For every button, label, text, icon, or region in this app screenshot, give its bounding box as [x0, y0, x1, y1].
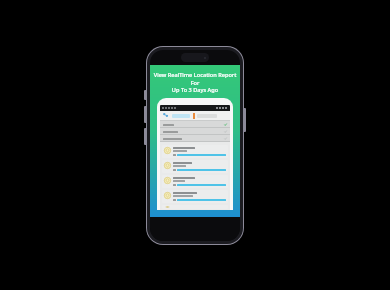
button[interactable] — [160, 121, 230, 128]
button[interactable] — [160, 128, 230, 135]
button[interactable] — [162, 145, 228, 158]
button[interactable] — [162, 205, 228, 209]
button[interactable] — [162, 190, 228, 203]
button[interactable] — [162, 160, 228, 173]
staticText: View RealTime Location Report For Up To … — [150, 71, 240, 93]
button[interactable] — [162, 175, 228, 188]
button[interactable] — [160, 135, 230, 142]
button[interactable]: App icon — [162, 112, 169, 119]
